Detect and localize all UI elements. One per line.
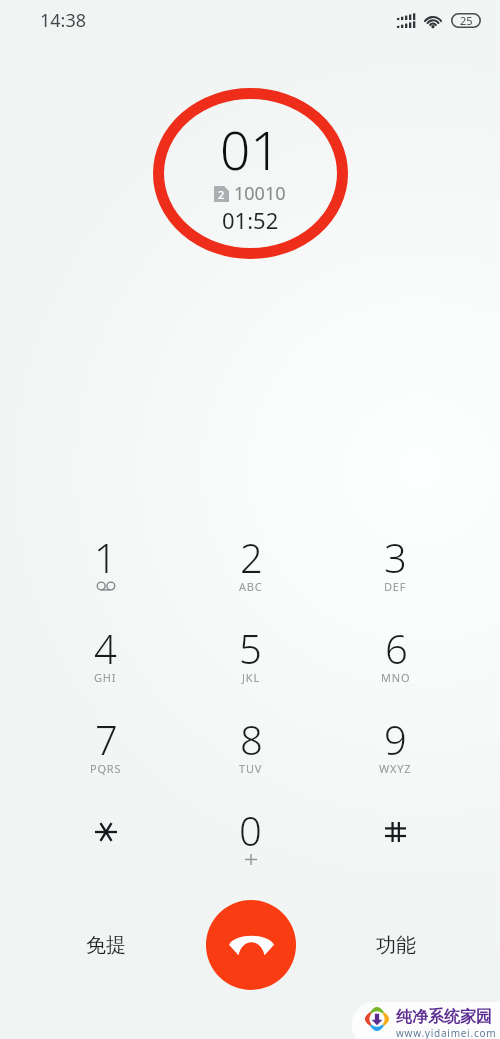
button[interactable]: 0 [178, 803, 323, 894]
staticText: JKL [242, 670, 260, 685]
button[interactable]: 6 [323, 621, 468, 712]
button[interactable]: 9 [323, 712, 468, 803]
button[interactable]: 7 [33, 712, 178, 803]
button[interactable]: 功能 [323, 900, 468, 990]
staticText: 1 [94, 530, 117, 584]
button[interactable]: star [33, 803, 178, 894]
button[interactable]: 8 [178, 712, 323, 803]
staticText: 0 [239, 803, 262, 857]
staticText: 5 [239, 621, 262, 675]
staticText: 25 [460, 13, 473, 28]
staticText: ABC [239, 579, 263, 594]
staticText: 14:38 [40, 8, 87, 33]
other: star [95, 822, 117, 842]
button[interactable]: End call [206, 900, 296, 990]
staticText: 01 [220, 113, 281, 185]
staticText: TUV [239, 761, 263, 776]
button[interactable]: 3 [323, 530, 468, 621]
staticText: MNO [381, 670, 411, 685]
staticText: 8 [240, 712, 263, 766]
button[interactable]: 免提 [33, 900, 178, 990]
staticText: www.yidaimei.com [396, 1026, 497, 1039]
button[interactable]: 1 [33, 530, 178, 621]
staticText: 3 [384, 530, 407, 584]
staticText: 4 [94, 621, 117, 675]
staticText: 功能 [376, 933, 416, 958]
staticText: 01:52 [222, 205, 279, 235]
staticText: 7 [95, 712, 118, 766]
other: pound [385, 822, 406, 842]
staticText: 6 [385, 621, 408, 675]
button[interactable]: 4 [33, 621, 178, 712]
button[interactable]: 5 [178, 621, 323, 712]
staticText: 10010 [234, 181, 286, 206]
staticText: 纯净系统家园 [396, 1007, 492, 1027]
staticText: 免提 [86, 933, 126, 958]
staticText: PQRS [90, 761, 122, 776]
staticText: 2 [240, 530, 263, 584]
button[interactable]: 2 [178, 530, 323, 621]
staticText: GHI [94, 670, 117, 685]
staticText: DEF [384, 579, 407, 594]
staticText: WXYZ [379, 761, 412, 776]
staticText: 9 [384, 712, 407, 766]
button[interactable]: pound [323, 803, 468, 894]
staticText: 2 [218, 187, 225, 202]
